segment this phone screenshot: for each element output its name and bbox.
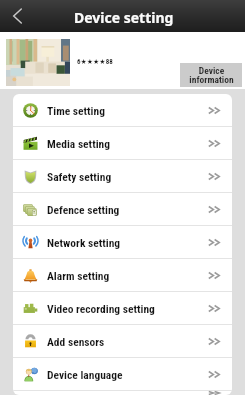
button[interactable]: Time setting xyxy=(13,94,232,126)
button[interactable]: Back xyxy=(0,0,36,32)
staticText: Video recording setting xyxy=(47,302,155,315)
button[interactable]: Video recording setting xyxy=(13,292,232,324)
staticText: Safety setting xyxy=(47,170,112,183)
staticText: Time setting xyxy=(47,104,105,117)
staticText: Device setting xyxy=(74,8,174,27)
staticText: Device language xyxy=(47,368,123,381)
button[interactable]: Device information xyxy=(180,63,242,87)
button[interactable]: Alarm setting xyxy=(13,259,232,291)
button[interactable]: Safety setting xyxy=(13,160,232,192)
staticText: Alarm setting xyxy=(47,269,110,282)
button[interactable]: Add sensors xyxy=(13,325,232,357)
staticText: Device information xyxy=(189,65,234,85)
staticText: Media setting xyxy=(47,137,111,150)
button[interactable]: Media setting xyxy=(13,127,232,159)
button[interactable] xyxy=(13,391,232,395)
button[interactable]: Device language xyxy=(13,358,232,390)
button[interactable]: Network setting xyxy=(13,226,232,258)
staticText: Defence setting xyxy=(47,203,120,216)
staticText: 6★★★★88 xyxy=(77,58,113,66)
button[interactable]: Defence setting xyxy=(13,193,232,225)
staticText: Add sensors xyxy=(47,335,105,348)
staticText: Network setting xyxy=(47,236,121,249)
